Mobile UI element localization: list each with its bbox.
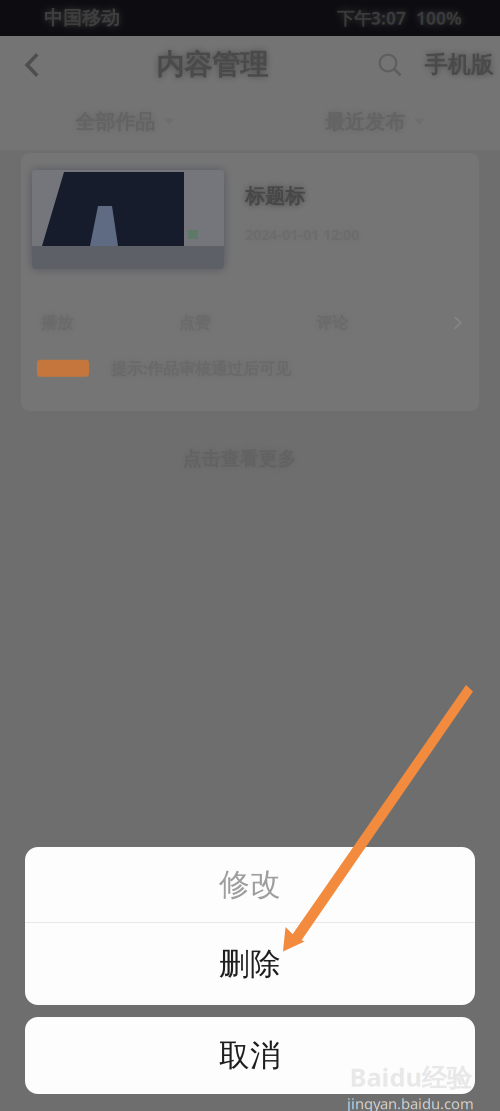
staticText: 中国移动 xyxy=(44,6,120,29)
button[interactable]: 删除 xyxy=(25,923,475,1005)
button[interactable]: 全部作品 xyxy=(50,94,200,150)
button[interactable]: 修改 xyxy=(25,847,475,922)
button[interactable]: 取消 xyxy=(25,1017,475,1094)
button[interactable]: Back xyxy=(0,36,62,94)
staticText: 评论 xyxy=(316,313,348,333)
staticText: 取消 xyxy=(219,1037,281,1074)
staticText: 标题标 xyxy=(245,184,305,209)
staticText: 删除 xyxy=(219,945,281,983)
staticText: 最近发布 xyxy=(325,110,405,134)
staticText: 全部作品 xyxy=(75,110,155,134)
staticText: 修改 xyxy=(219,866,281,903)
staticText: 内容管理 xyxy=(156,48,268,82)
staticText: 2024-01-01 12:00 xyxy=(245,225,359,244)
staticText: 提示:作品审核通过后可见 xyxy=(111,358,291,379)
staticText: 100% xyxy=(416,6,462,29)
staticText: 播放 xyxy=(41,313,73,333)
staticText: 下午3:07 xyxy=(337,6,406,29)
button[interactable]: 点击查看更多 xyxy=(130,435,370,483)
staticText: jingyan.baidu.com xyxy=(347,1094,474,1111)
staticText: 点击查看更多 xyxy=(182,447,296,470)
button[interactable]: 手机版 xyxy=(418,36,500,94)
button[interactable]: Search xyxy=(362,36,418,94)
staticText: Baidu经验 xyxy=(349,1060,471,1094)
button[interactable]: 标题标 xyxy=(21,153,479,411)
staticText: 点赞 xyxy=(179,313,211,333)
button[interactable]: 最近发布 xyxy=(300,94,450,150)
staticText: 手机版 xyxy=(424,51,493,79)
